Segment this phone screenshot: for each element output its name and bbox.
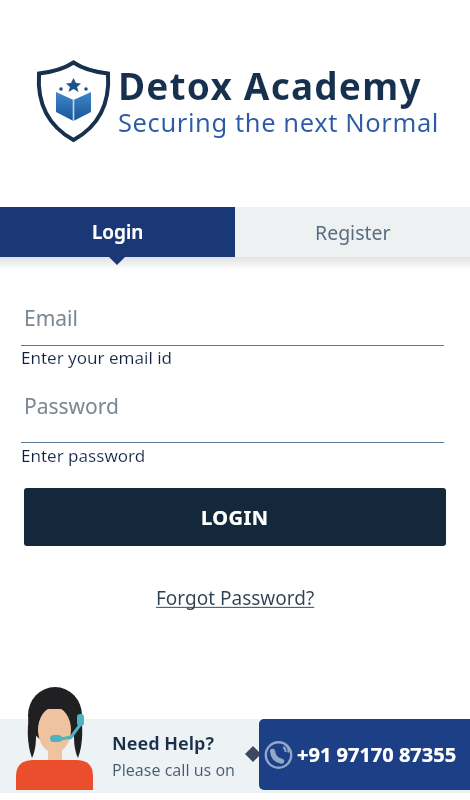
- staticText: Email: [24, 304, 78, 333]
- staticText: Detox Academy: [118, 60, 422, 110]
- button[interactable]: Register: [235, 207, 470, 257]
- button[interactable]: Login: [0, 207, 235, 257]
- staticText: Login: [92, 219, 144, 245]
- staticText: LOGIN: [201, 504, 269, 531]
- staticText: +91 97170 87355: [297, 741, 457, 768]
- button[interactable]: Forgot Password?: [156, 585, 315, 611]
- staticText: Securing the next Normal: [118, 105, 439, 140]
- button[interactable]: +91 97170 87355: [259, 719, 470, 790]
- button[interactable]: LOGIN: [24, 488, 446, 546]
- staticText: Register: [315, 219, 391, 246]
- staticText: Please call us on: [112, 759, 236, 781]
- staticText: Enter your email id: [21, 346, 173, 369]
- staticText: Enter password: [21, 444, 146, 467]
- staticText: Need Help?: [112, 731, 215, 756]
- staticText: Password: [24, 392, 119, 421]
